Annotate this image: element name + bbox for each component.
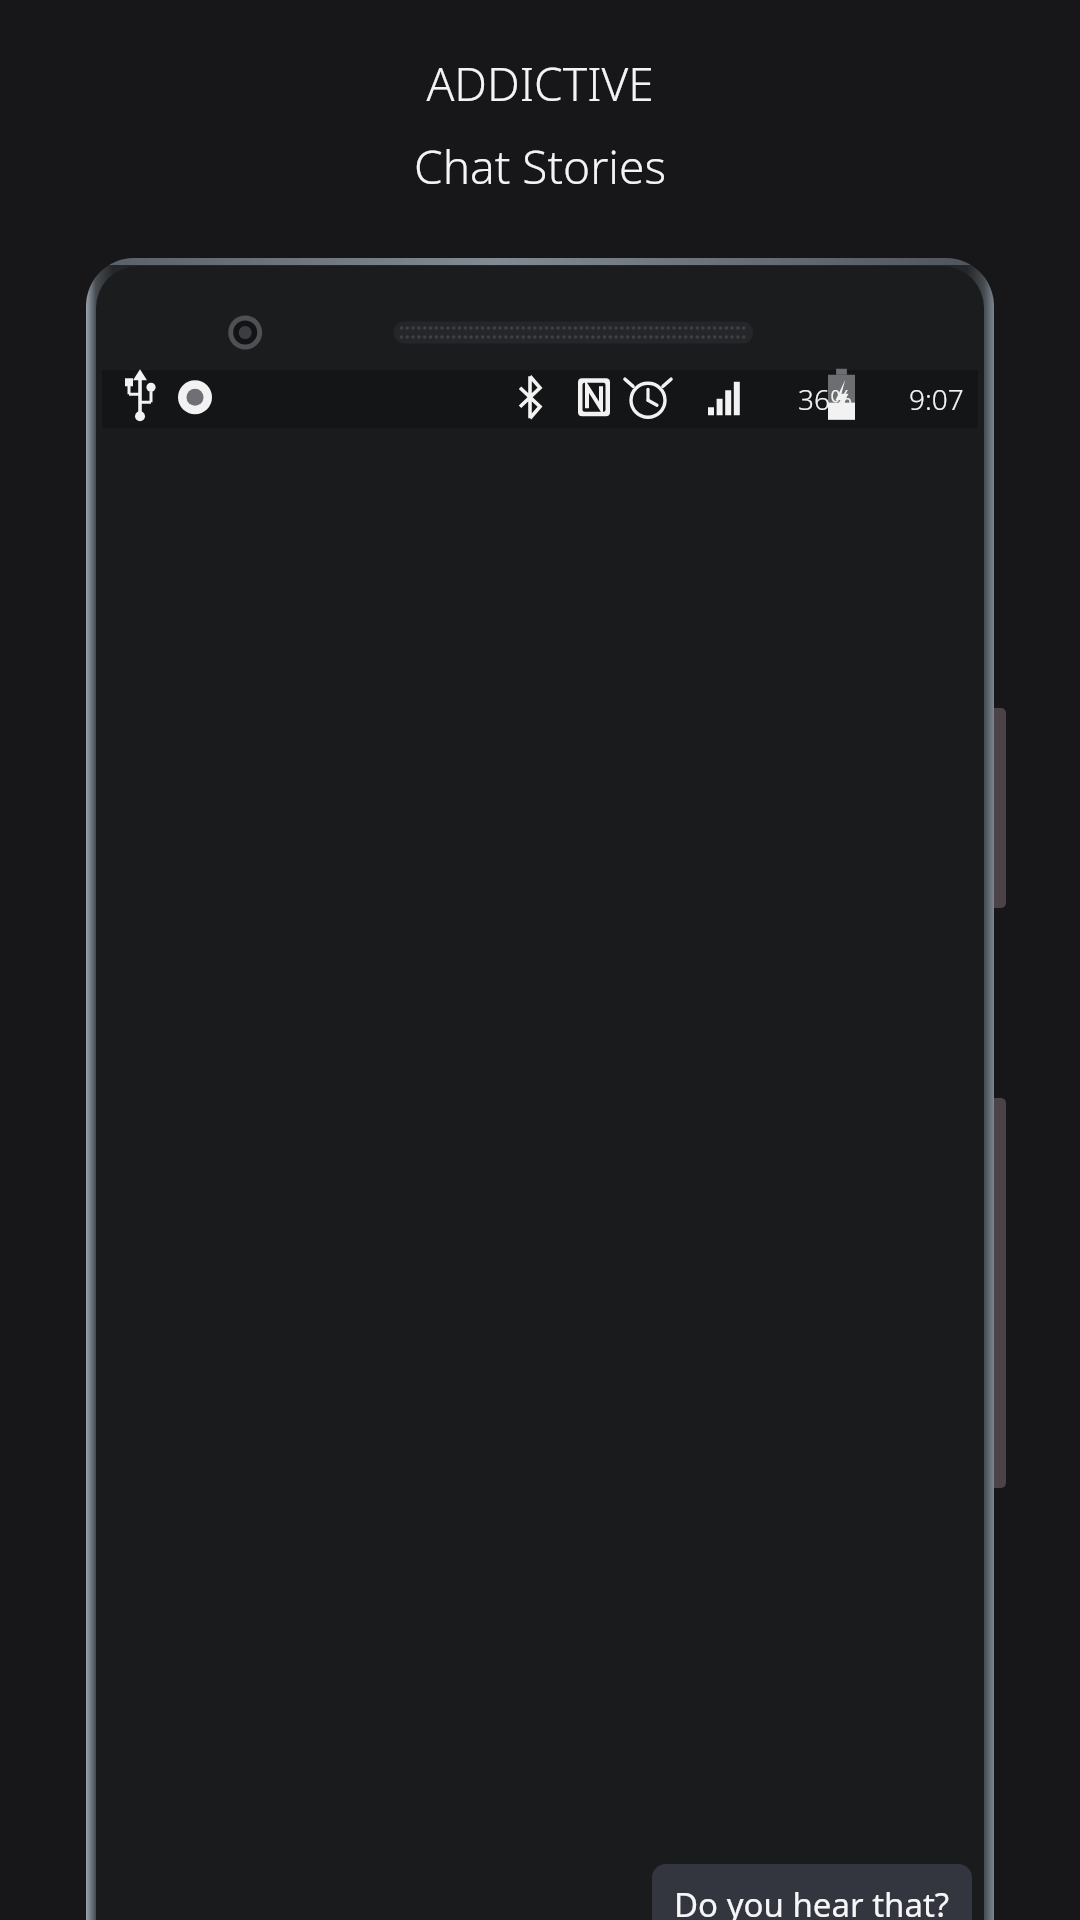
staticText: ADDICTIVE <box>426 52 654 115</box>
button[interactable]: Do you hear that? <box>652 1864 972 1920</box>
staticText: Do you hear that? <box>674 1882 950 1920</box>
staticText: Chat Stories <box>414 135 666 198</box>
staticText: 9:07 <box>909 380 964 418</box>
staticText: 36% <box>798 380 853 418</box>
